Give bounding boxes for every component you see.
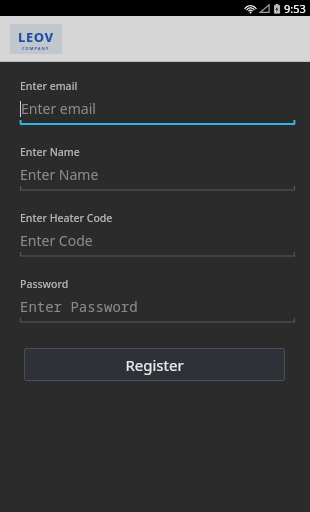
- staticText: Register: [125, 355, 184, 375]
- staticText: LEOV: [18, 28, 54, 46]
- staticText: Enter Name: [20, 145, 80, 159]
- button[interactable]: Password: [0, 277, 310, 325]
- staticText: Enter Name: [20, 165, 99, 184]
- staticText: Enter email: [21, 99, 96, 118]
- staticText: Enter Code: [20, 231, 93, 250]
- button[interactable]: Register: [24, 348, 285, 381]
- staticText: Enter Heater Code: [20, 211, 113, 225]
- staticText: Enter email: [20, 79, 78, 93]
- staticText: 9:53: [284, 1, 306, 16]
- button[interactable]: Enter Name: [0, 145, 310, 193]
- button[interactable]: Enter email: [0, 79, 310, 127]
- staticText: COMPANY: [22, 46, 50, 51]
- button[interactable]: Enter Heater Code: [0, 211, 310, 259]
- button[interactable]: LEOV Company logo: [10, 24, 62, 54]
- staticText: Password: [20, 277, 69, 291]
- staticText: Enter Password: [20, 297, 138, 316]
